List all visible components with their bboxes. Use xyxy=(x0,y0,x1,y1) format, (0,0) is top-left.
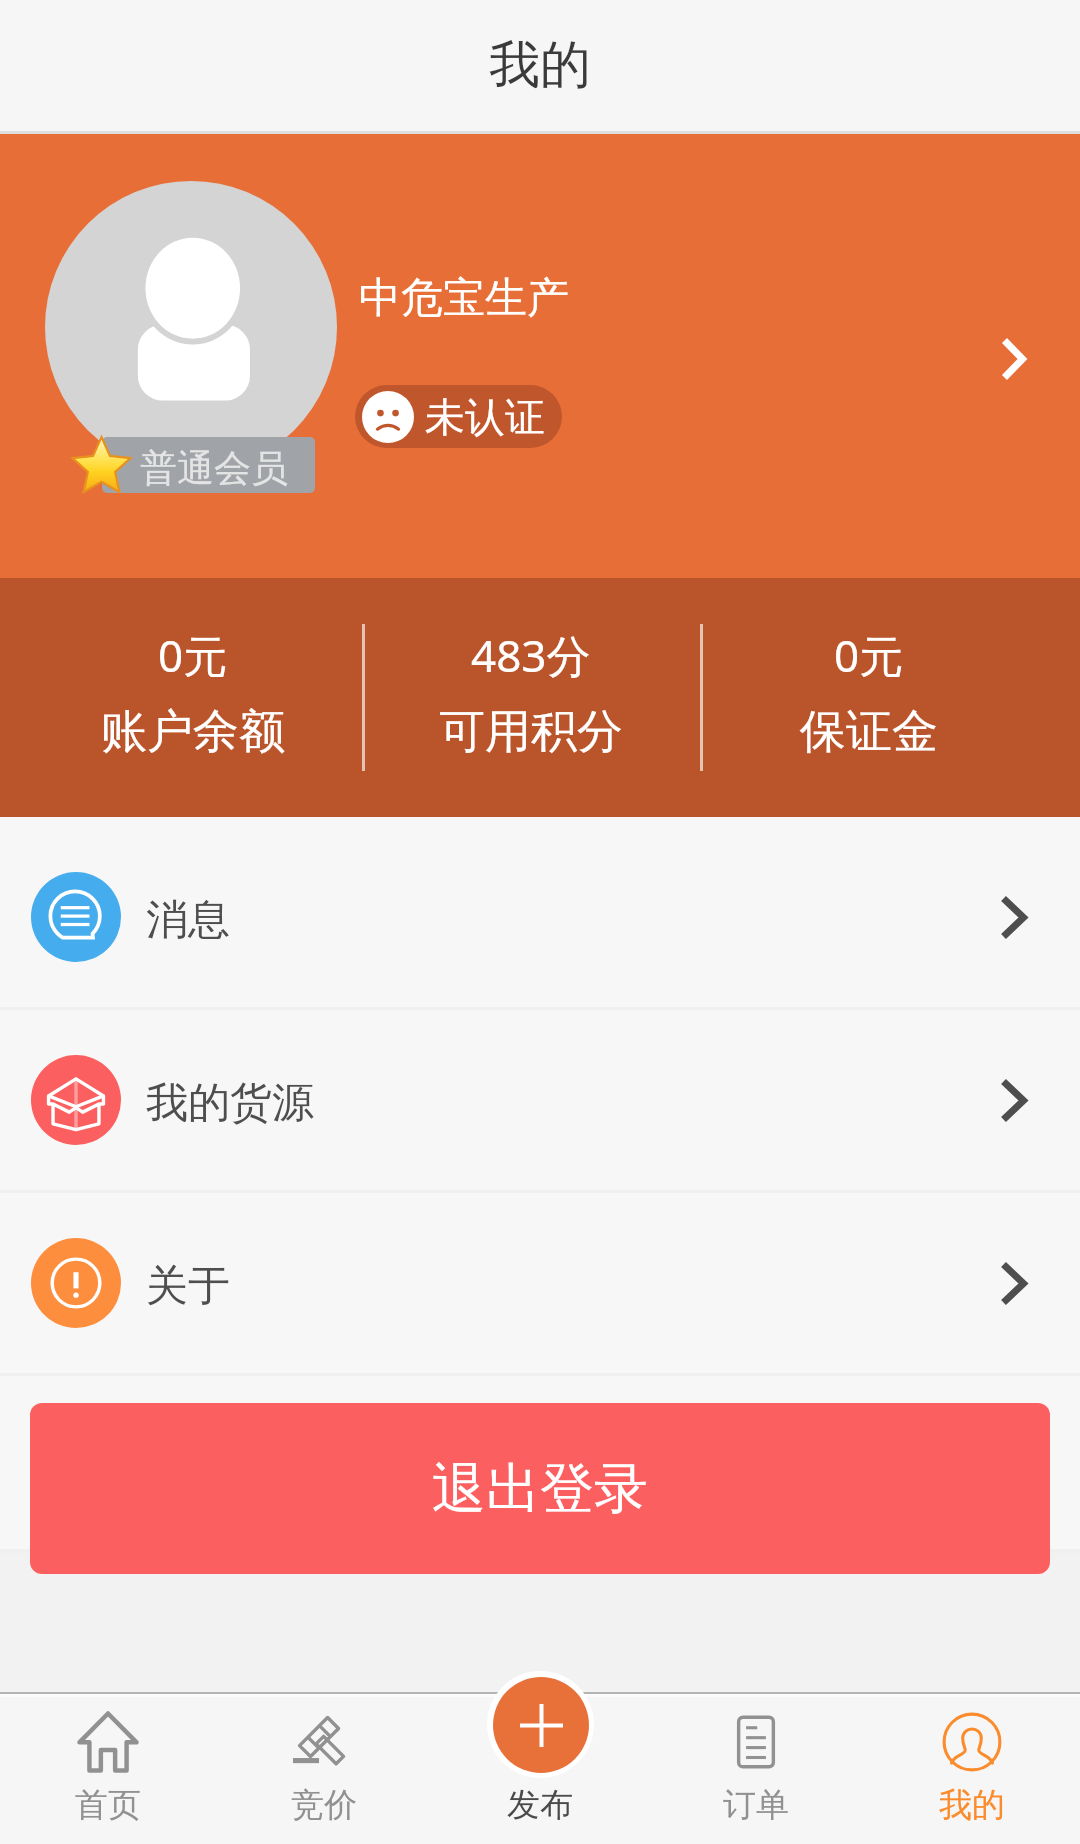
staticText: 订单 xyxy=(723,1784,789,1826)
staticText: 竞价 xyxy=(291,1784,357,1826)
button[interactable]: 我的 xyxy=(864,1692,1080,1844)
staticText: 消息 xyxy=(146,894,230,947)
staticText: 483分 xyxy=(471,625,591,685)
button[interactable]: 发布 xyxy=(432,1692,648,1844)
button[interactable]: 普通会员 xyxy=(0,134,1080,578)
staticText: 0元 xyxy=(158,625,228,685)
button[interactable]: 订单 xyxy=(648,1692,864,1844)
button[interactable]: 未认证 xyxy=(362,385,545,448)
button[interactable]: 竞价 xyxy=(216,1692,432,1844)
staticText: 保证金 xyxy=(800,703,938,761)
button[interactable]: 0元 xyxy=(24,578,362,817)
staticText: 普通会员 xyxy=(140,445,288,492)
button[interactable]: 退出登录 xyxy=(30,1403,1050,1574)
button[interactable]: 关于 xyxy=(0,1193,1080,1373)
button[interactable]: 0元 xyxy=(700,578,1038,817)
button[interactable]: 消息 xyxy=(0,827,1080,1007)
staticText: 未认证 xyxy=(425,392,545,442)
other: 查看个人资料 xyxy=(1001,337,1026,381)
staticText: 退出登录 xyxy=(432,1455,648,1523)
staticText: 我的 xyxy=(489,33,591,97)
staticText: 我的 xyxy=(939,1784,1005,1826)
button[interactable]: 483分 xyxy=(362,578,700,817)
button[interactable]: 发布 xyxy=(493,1677,589,1773)
button[interactable]: 我的货源 xyxy=(0,1010,1080,1190)
staticText: 我的货源 xyxy=(146,1077,314,1130)
staticText: 账户余额 xyxy=(101,703,285,761)
button[interactable]: 首页 xyxy=(0,1692,216,1844)
staticText: 中危宝生产 xyxy=(359,272,569,325)
staticText: 可用积分 xyxy=(439,703,623,761)
staticText: 首页 xyxy=(75,1784,141,1826)
staticText: 发布 xyxy=(507,1784,573,1826)
staticText: 0元 xyxy=(834,625,904,685)
staticText: 关于 xyxy=(146,1260,230,1313)
